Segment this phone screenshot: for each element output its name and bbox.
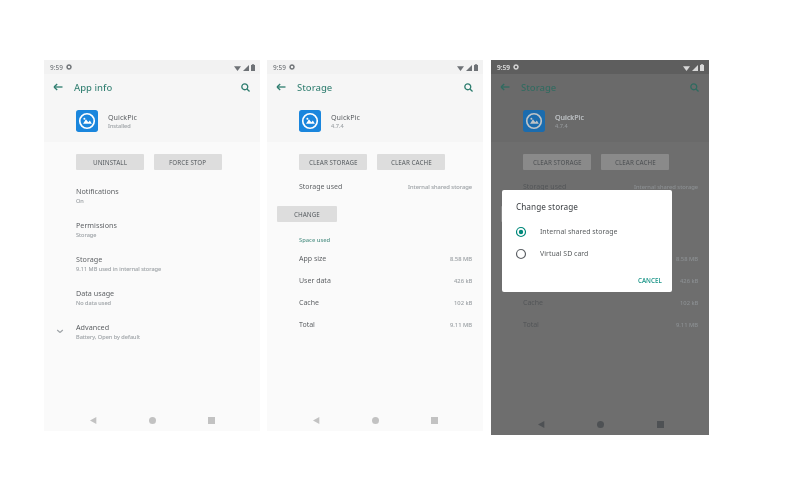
staticText: 102 kB (680, 299, 699, 307)
staticText: Permissions (76, 220, 117, 230)
staticText: Internal shared storage (634, 183, 699, 191)
staticText: QuickPic (331, 112, 360, 122)
staticText: QuickPic (555, 112, 584, 122)
staticText: CLEAR STORAGE (533, 158, 582, 167)
staticText: Cache (523, 298, 543, 308)
staticText: Virtual SD card (540, 249, 589, 259)
staticText: On (76, 197, 84, 205)
staticText: Advanced (76, 322, 110, 332)
staticText: 9.11 MB used in internal storage (76, 265, 162, 273)
staticText: 9.11 MB (450, 321, 473, 329)
staticText: Storage (76, 254, 103, 264)
button[interactable]: Back (48, 77, 68, 97)
button[interactable]: Storage (44, 246, 260, 280)
staticText: Total (523, 320, 539, 330)
button[interactable]: Home (365, 410, 385, 430)
staticText: 102 kB (454, 299, 473, 307)
staticText: Installed (108, 122, 131, 130)
button[interactable]: Back (495, 77, 515, 97)
button[interactable]: Cache (299, 292, 473, 314)
staticText: CLEAR STORAGE (309, 158, 358, 167)
button[interactable]: CHANGE (277, 206, 337, 222)
staticText: CANCEL (638, 276, 662, 285)
staticText: Change storage (516, 201, 578, 212)
button[interactable]: Back (271, 77, 291, 97)
staticText: Cache (299, 298, 319, 308)
button[interactable]: Recents (201, 410, 221, 430)
button[interactable]: Search (235, 77, 255, 97)
button[interactable]: CLEAR CACHE (601, 154, 669, 170)
button[interactable]: Search (458, 77, 478, 97)
staticText: Data usage (76, 288, 115, 298)
button[interactable]: UNINSTALL (76, 154, 144, 170)
button[interactable]: Data usage (44, 280, 260, 314)
button[interactable]: Total (299, 314, 473, 336)
staticText: 9:59 (50, 63, 63, 72)
staticText: CHANGE (294, 210, 320, 219)
staticText: 4.7.4 (555, 122, 568, 130)
button[interactable]: Home (142, 410, 162, 430)
button[interactable]: Back (83, 410, 103, 430)
staticText: Total (299, 320, 315, 330)
button[interactable]: Recents (650, 414, 670, 434)
staticText: 4.7.4 (331, 122, 344, 130)
button[interactable]: Permissions (44, 212, 260, 246)
button[interactable]: Virtual SD card (516, 243, 662, 265)
staticText: Storage used (523, 182, 567, 192)
staticText: CLEAR CACHE (391, 158, 432, 167)
staticText: User data (299, 276, 331, 286)
button[interactable]: Notifications (44, 178, 260, 212)
staticText: Storage (297, 81, 333, 94)
button[interactable]: User data (523, 270, 699, 292)
staticText: Battery, Open by default (76, 333, 140, 341)
staticText: 8.58 MB (450, 255, 473, 263)
button[interactable]: App size (523, 248, 699, 270)
button[interactable]: CANCEL (638, 276, 662, 285)
staticText: QuickPic (108, 112, 137, 122)
button[interactable]: CLEAR STORAGE (523, 154, 591, 170)
button[interactable]: CLEAR STORAGE (299, 154, 367, 170)
staticText: Notifications (76, 186, 119, 196)
staticText: CHANGE (518, 210, 544, 219)
staticText: UNINSTALL (93, 158, 128, 167)
staticText: FORCE STOP (169, 158, 207, 167)
staticText: Storage (521, 81, 557, 94)
button[interactable]: Home (590, 414, 610, 434)
staticText: Internal shared storage (408, 183, 473, 191)
button[interactable]: Recents (424, 410, 444, 430)
staticText: 9:59 (273, 63, 286, 72)
staticText: Internal shared storage (540, 227, 618, 237)
button[interactable]: CLEAR CACHE (377, 154, 445, 170)
staticText: Storage (76, 231, 97, 239)
staticText: App size (523, 254, 551, 264)
staticText: 9:59 (497, 63, 510, 72)
button[interactable]: Advanced (44, 314, 260, 348)
button[interactable]: CHANGE (501, 206, 561, 222)
staticText: 9.11 MB (676, 321, 699, 329)
staticText: App info (74, 81, 113, 94)
staticText: Storage used (299, 182, 343, 192)
button[interactable]: Search (684, 77, 704, 97)
staticText: Space used (299, 236, 331, 244)
staticText: 8.58 MB (676, 255, 699, 263)
button[interactable]: User data (299, 270, 473, 292)
button[interactable]: Internal shared storage (516, 221, 662, 243)
staticText: No data used (76, 299, 112, 307)
staticText: App size (299, 254, 327, 264)
staticText: CLEAR CACHE (615, 158, 656, 167)
staticText: 426 kB (680, 277, 699, 285)
button[interactable]: App size (299, 248, 473, 270)
staticText: 426 kB (454, 277, 473, 285)
button[interactable]: Back (531, 414, 551, 434)
button[interactable]: Back (306, 410, 326, 430)
button[interactable]: FORCE STOP (154, 154, 222, 170)
